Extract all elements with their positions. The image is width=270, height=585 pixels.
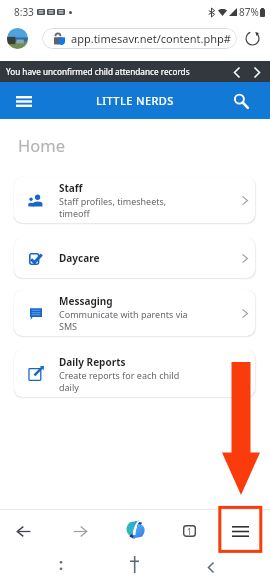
button[interactable]: Forward <box>63 514 97 548</box>
button[interactable]: Previous <box>229 64 245 80</box>
button[interactable]: app.timesavr.net/content.php# <box>42 28 237 49</box>
button[interactable]: Next <box>249 64 265 80</box>
button[interactable]: Messaging <box>14 290 255 336</box>
button[interactable]: Home <box>120 550 148 578</box>
button[interactable]: Reload <box>241 27 263 49</box>
button[interactable]: Daily Reports <box>14 350 255 397</box>
staticText: 1 <box>187 526 192 537</box>
button[interactable]: Staff <box>14 177 255 223</box>
staticText: 8:33 <box>14 5 34 19</box>
staticText: Daycare <box>59 251 100 265</box>
staticText: Staff <box>59 181 83 195</box>
button[interactable]: Copilot <box>118 514 152 548</box>
button[interactable]: Search <box>226 86 256 116</box>
button[interactable]: Back <box>197 553 225 581</box>
button[interactable]: Daycare <box>14 238 255 278</box>
button[interactable]: Settings and more <box>223 514 257 548</box>
staticText: LITTLE NERDS <box>96 93 174 108</box>
staticText: Staff profiles, timesheets, timeoff <box>59 195 167 219</box>
staticText: app.timesavr.net/content.php# <box>71 31 231 46</box>
button[interactable]: Profile <box>7 28 28 49</box>
staticText: Daily Reports <box>59 355 126 369</box>
staticText: Home <box>18 134 65 156</box>
staticText: Communicate with parents via SMS <box>59 308 188 332</box>
button[interactable]: Recents <box>47 551 75 579</box>
staticText: Messaging <box>59 294 113 308</box>
staticText: 87% <box>239 5 259 19</box>
button[interactable]: You have unconfirmed child attendance re… <box>0 61 270 82</box>
staticText: You have unconfirmed child attendance re… <box>6 66 190 77</box>
staticText: Create reports for each child daily <box>59 369 180 393</box>
button[interactable]: Tabs <box>172 514 206 548</box>
button[interactable]: Menu <box>8 85 40 117</box>
button[interactable]: Back <box>7 514 41 548</box>
